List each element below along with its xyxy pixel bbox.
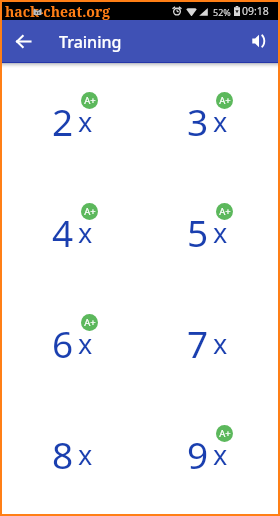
staticText: 9 bbox=[187, 429, 209, 479]
staticText: x bbox=[78, 325, 93, 362]
button[interactable]: 7 bbox=[140, 287, 275, 398]
staticText: 09:18 bbox=[242, 4, 269, 18]
button[interactable]: 9 bbox=[140, 398, 275, 509]
staticText: x bbox=[78, 103, 93, 140]
button[interactable]: 5 bbox=[140, 176, 275, 287]
staticText: 5 bbox=[187, 207, 209, 257]
button[interactable]: 6 bbox=[5, 287, 140, 398]
staticText: A+ bbox=[84, 205, 96, 218]
staticText: Training bbox=[59, 31, 122, 53]
staticText: 2 bbox=[52, 96, 74, 146]
staticText: A+ bbox=[219, 427, 231, 440]
staticText: x bbox=[213, 103, 228, 140]
staticText: 7 bbox=[187, 318, 209, 368]
button[interactable]: Volume bbox=[245, 27, 273, 55]
staticText: 4 bbox=[52, 207, 74, 257]
staticText: x bbox=[78, 214, 93, 251]
staticText: A+ bbox=[219, 94, 231, 107]
button[interactable]: Back bbox=[9, 27, 37, 55]
button[interactable]: 3 bbox=[140, 65, 275, 176]
staticText: 6 bbox=[52, 318, 74, 368]
staticText: A+ bbox=[84, 94, 96, 107]
staticText: 8 bbox=[52, 429, 74, 479]
staticText: x bbox=[78, 436, 93, 473]
staticText: 3 bbox=[187, 96, 209, 146]
button[interactable]: 8 bbox=[5, 398, 140, 509]
button[interactable]: 4 bbox=[5, 176, 140, 287]
staticText: x bbox=[213, 325, 228, 362]
button[interactable]: 2 bbox=[5, 65, 140, 176]
staticText: 52% bbox=[213, 6, 231, 18]
staticText: A+ bbox=[219, 205, 231, 218]
staticText: x bbox=[213, 214, 228, 251]
staticText: x bbox=[213, 436, 228, 473]
staticText: hack-cheat.org bbox=[5, 2, 111, 20]
staticText: A+ bbox=[84, 316, 96, 329]
